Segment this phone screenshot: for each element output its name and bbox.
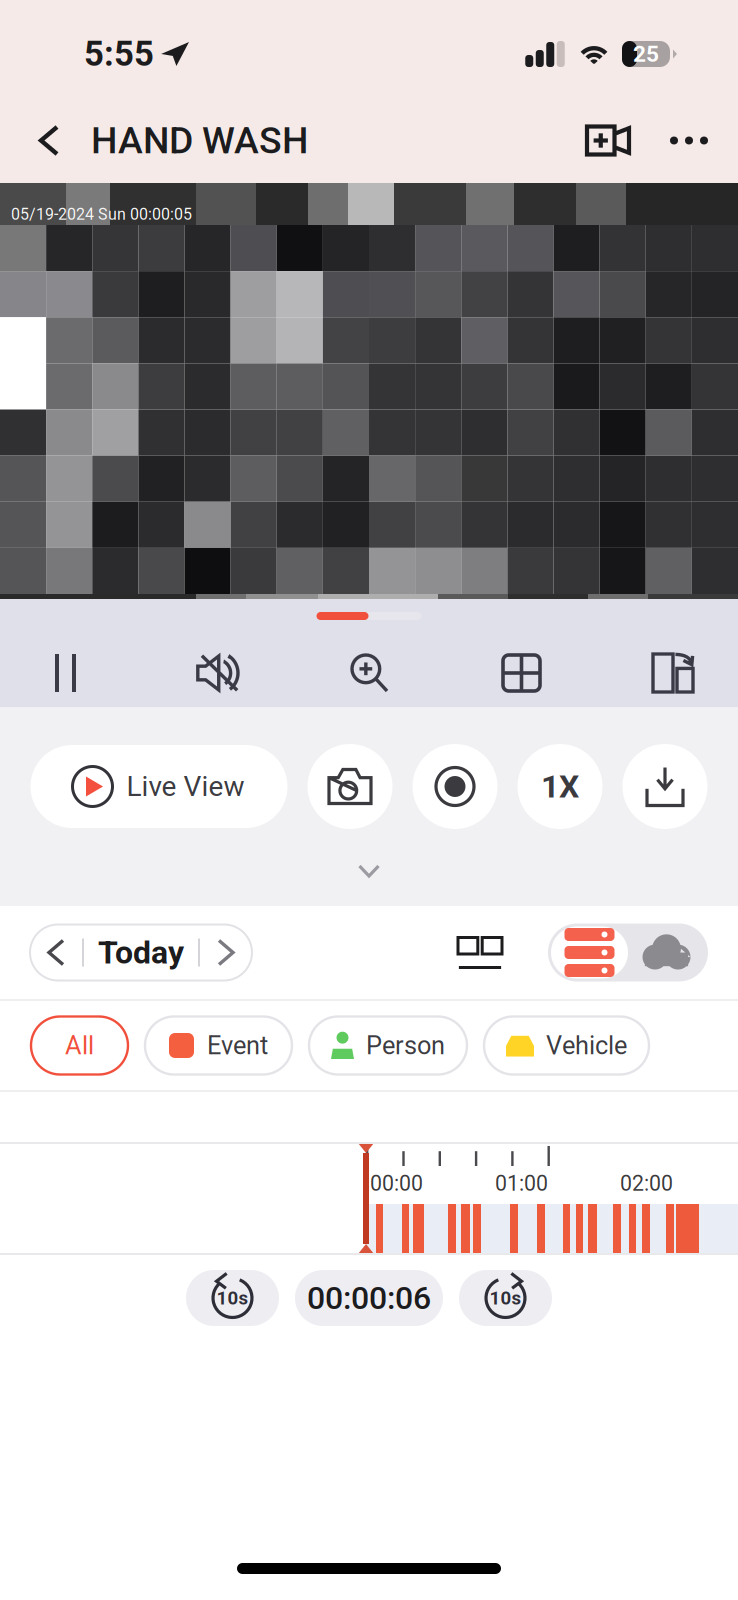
button[interactable]: 00:00:06 [295,1270,443,1326]
button[interactable]: Download [622,744,707,829]
staticText: 5:55 [84,34,154,74]
staticText: Vehicle [546,1031,627,1060]
staticText: Event [207,1031,268,1060]
button[interactable]: Back 10 seconds [186,1270,279,1326]
button[interactable]: Multi view [442,919,518,985]
staticText: 01:00 [495,1171,548,1196]
button[interactable]: Vehicle [484,1016,649,1074]
button[interactable]: Today [30,924,252,980]
staticText: 10s [489,1287,521,1309]
staticText: 1X [541,768,579,805]
button[interactable]: Forward 10 seconds [459,1270,552,1326]
staticText: Live View [126,770,244,803]
staticText: Person [366,1031,445,1060]
staticText: 00:00 [370,1171,423,1196]
button[interactable]: Zoom [304,649,435,697]
staticText: Today [98,934,184,971]
staticText: 10s [216,1287,248,1309]
button[interactable]: Event [145,1016,292,1074]
button[interactable]: Live View [30,745,287,828]
button[interactable]: Add camera [546,100,649,180]
button[interactable]: Person [309,1016,467,1074]
button[interactable]: Rotate [608,649,738,697]
staticText: HAND WASH [91,119,308,162]
staticText: 25 [633,41,659,67]
staticText: 02:00 [620,1171,673,1196]
button[interactable]: Mute [131,649,304,697]
button[interactable]: Split view [435,649,608,697]
button[interactable]: Local storage [551,926,628,978]
button[interactable]: All [31,1016,128,1074]
button[interactable]: More options [649,101,721,179]
staticText: 05/19-2024 Sun 00:00:05 [11,205,192,224]
staticText: All [65,1031,94,1060]
button[interactable]: 1X [517,744,602,829]
button[interactable]: Pause [0,649,131,697]
button[interactable]: Snapshot [307,744,392,829]
button[interactable]: Cloud storage [628,926,705,978]
staticText: 00:00:06 [307,1279,431,1317]
button[interactable]: Collapse [0,829,738,906]
button[interactable]: Back [21,103,91,178]
button[interactable]: Record [412,744,497,829]
